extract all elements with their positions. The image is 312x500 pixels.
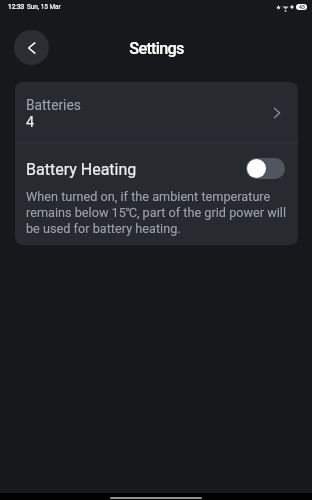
staticText: Batteries [26, 97, 81, 113]
staticText: Battery Heating [26, 160, 247, 179]
staticText: 12:33 [8, 3, 25, 11]
staticText: Sun, 15 Mar [27, 3, 61, 11]
button[interactable]: Batteries [15, 82, 298, 142]
staticText: 43 [299, 4, 305, 10]
staticText: When turned on, if the ambient temperatu… [26, 189, 288, 236]
button[interactable]: Back [14, 30, 49, 65]
staticText: Settings [129, 39, 184, 58]
button[interactable]: Battery Heating toggle [246, 158, 285, 179]
staticText: 4 [26, 114, 35, 131]
